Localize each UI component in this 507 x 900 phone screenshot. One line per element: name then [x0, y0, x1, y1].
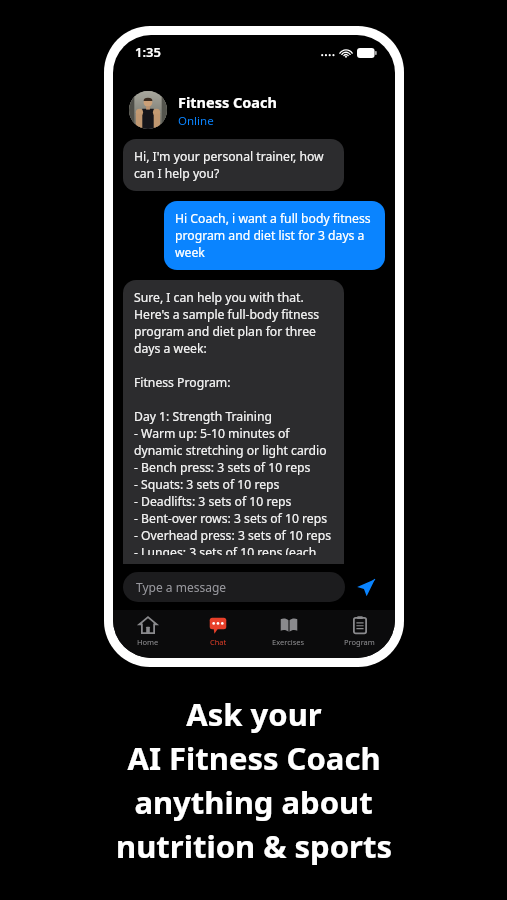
staticText: Hi, I'm your personal trainer, how can I…: [134, 148, 333, 182]
staticText: Online: [178, 113, 214, 129]
button[interactable]: Chat: [183, 610, 253, 658]
staticText: Exercises: [272, 637, 305, 647]
staticText: Home: [137, 637, 159, 647]
button[interactable]: Hi, I'm your personal trainer, how can I…: [123, 139, 344, 191]
staticText: Program: [344, 637, 375, 647]
button[interactable]: Home: [113, 610, 183, 658]
button[interactable]: Exercises: [253, 610, 324, 658]
other: Coach avatar: [129, 91, 167, 129]
staticText: Sure, I can help you with that. Here's a…: [134, 289, 333, 555]
staticText: AI Fitness Coach: [127, 737, 381, 779]
staticText: Type a message: [136, 579, 227, 595]
staticText: 1:35: [135, 43, 161, 61]
staticText: Ask your: [186, 693, 322, 735]
staticText: Fitness Coach: [178, 92, 277, 112]
staticText: nutrition & sports: [116, 825, 392, 867]
button[interactable]: Sure, I can help you with that. Here's a…: [123, 280, 344, 564]
staticText: Chat: [210, 637, 227, 647]
staticText: Hi Coach, i want a full body fitness pro…: [175, 210, 374, 261]
staticText: anything about: [134, 781, 373, 823]
button[interactable]: Hi Coach, i want a full body fitness pro…: [164, 201, 385, 270]
button[interactable]: Type a message: [123, 572, 345, 602]
button[interactable]: Send: [345, 567, 385, 607]
button[interactable]: Program: [324, 610, 395, 658]
button[interactable]: Coach avatar: [129, 91, 379, 129]
